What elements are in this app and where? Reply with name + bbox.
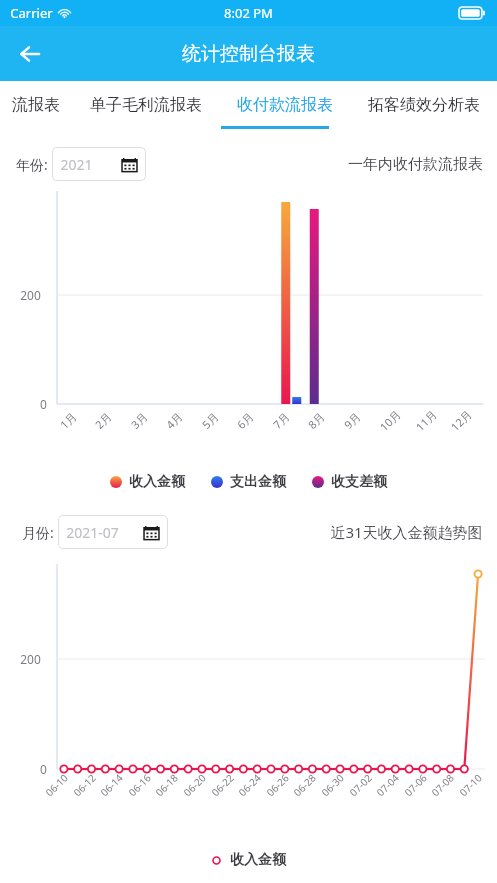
staticText: 06-10 <box>42 770 71 799</box>
staticText: 0 <box>40 761 47 777</box>
button[interactable]: 流报表 <box>0 81 72 129</box>
staticText: 06-30 <box>318 770 347 799</box>
staticText: 收入金额 <box>129 473 185 491</box>
staticText: 6月 <box>233 409 257 432</box>
staticText: 5月 <box>198 409 222 432</box>
button[interactable]: 2021-07 <box>58 515 168 549</box>
staticText: 流报表 <box>12 95 60 115</box>
staticText: 8:02 PM <box>224 4 273 22</box>
staticText: 11月 <box>412 407 440 434</box>
button[interactable]: 收付款流报表 <box>220 81 350 129</box>
staticText: 06-24 <box>235 770 264 799</box>
button[interactable]: 拓客绩效分析表 <box>350 81 497 129</box>
staticText: 10月 <box>376 407 404 434</box>
staticText: 单子毛利流报表 <box>90 95 202 115</box>
staticText: 9月 <box>340 409 364 432</box>
staticText: 年份: <box>16 155 48 174</box>
staticText: 06-18 <box>152 770 181 799</box>
staticText: 2021-07 <box>66 523 119 542</box>
staticText: 4月 <box>162 409 186 432</box>
staticText: 12月 <box>447 407 475 434</box>
staticText: 06-20 <box>180 770 209 799</box>
staticText: 2月 <box>91 409 115 432</box>
staticText: 0 <box>40 396 47 412</box>
staticText: 收付款流报表 <box>237 95 333 115</box>
staticText: 07-08 <box>428 770 457 799</box>
button[interactable]: 单子毛利流报表 <box>72 81 220 129</box>
staticText: 3月 <box>127 409 151 432</box>
staticText: 支出金额 <box>230 473 286 491</box>
staticText: 07-04 <box>373 770 402 799</box>
staticText: 07-10 <box>456 770 485 799</box>
button[interactable]: Back <box>6 30 54 78</box>
staticText: 07-02 <box>346 770 375 799</box>
staticText: 06-12 <box>70 770 99 799</box>
staticText: 06-16 <box>125 770 154 799</box>
staticText: 07-06 <box>401 770 430 799</box>
button[interactable]: 2021 <box>52 147 146 181</box>
staticText: 1月 <box>56 409 80 432</box>
staticText: Carrier <box>10 4 53 22</box>
staticText: 近31天收入金额趋势图 <box>330 522 483 542</box>
staticText: 一年内收付款流报表 <box>348 155 483 174</box>
staticText: 2021 <box>60 155 93 174</box>
staticText: 06-14 <box>97 770 126 799</box>
staticText: 06-26 <box>263 770 292 799</box>
staticText: 统计控制台报表 <box>182 42 315 66</box>
staticText: 06-28 <box>290 770 319 799</box>
staticText: 拓客绩效分析表 <box>368 95 480 115</box>
staticText: 7月 <box>269 409 293 432</box>
staticText: 收入金额 <box>230 851 286 869</box>
staticText: 收支差额 <box>331 473 387 491</box>
staticText: 200 <box>20 287 41 303</box>
staticText: 200 <box>20 651 41 667</box>
staticText: 月份: <box>22 523 54 542</box>
staticText: 8月 <box>304 409 328 432</box>
staticText: 06-22 <box>208 770 237 799</box>
